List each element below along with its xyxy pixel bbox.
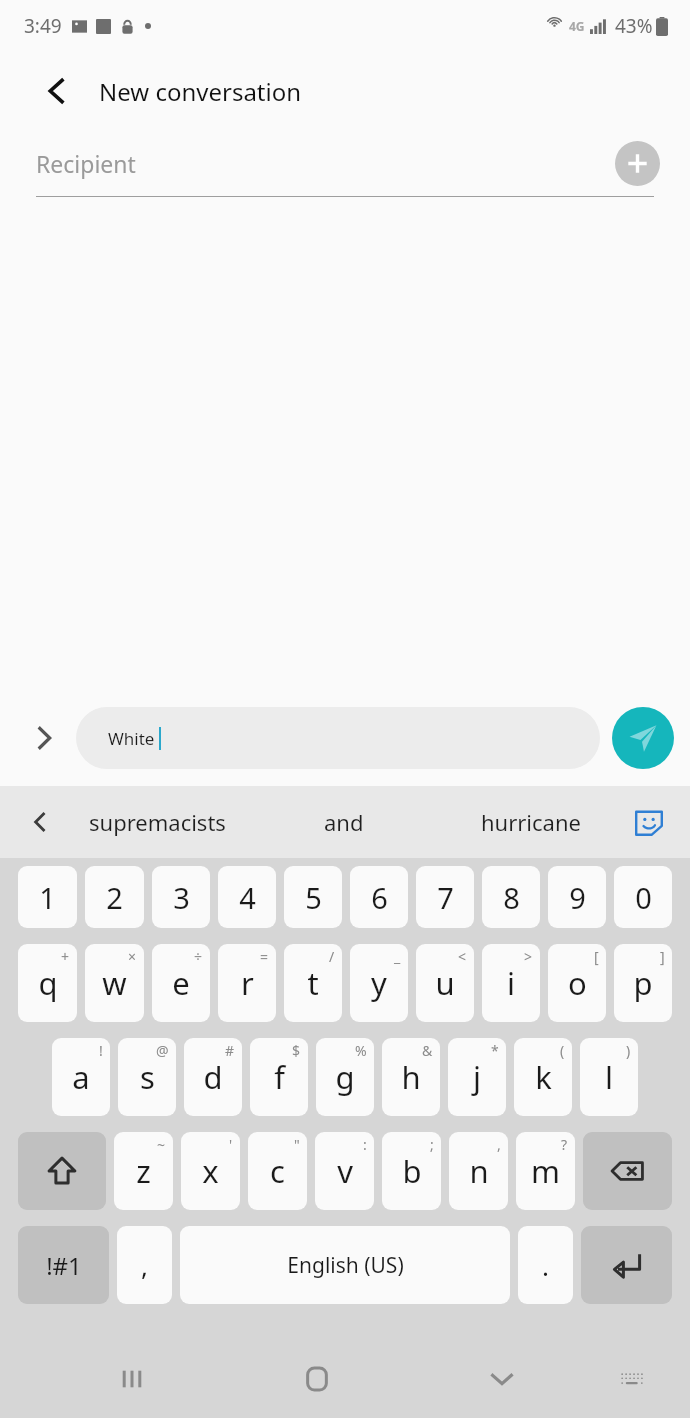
staticText: 5	[305, 878, 322, 917]
button[interactable]: Stickers	[624, 797, 674, 847]
staticText: m	[531, 1150, 560, 1192]
button[interactable]: !#1	[18, 1226, 109, 1304]
button[interactable]: 7	[416, 866, 474, 928]
staticText: ]	[660, 947, 665, 966]
button[interactable]: #	[184, 1038, 242, 1116]
staticText: :	[363, 1135, 367, 1154]
button[interactable]: 9	[548, 866, 606, 928]
button[interactable]: &	[382, 1038, 440, 1116]
staticText: ,	[497, 1135, 501, 1154]
button[interactable]: 8	[482, 866, 540, 928]
button[interactable]: Recents	[102, 1349, 162, 1409]
staticText: and	[324, 807, 364, 837]
staticText: h	[401, 1056, 421, 1098]
button[interactable]: /	[284, 944, 342, 1022]
staticText: +	[61, 947, 70, 966]
staticText: q	[38, 962, 58, 1004]
button[interactable]: hurricane	[437, 786, 624, 858]
button[interactable]: =	[218, 944, 276, 1022]
button[interactable]: :	[315, 1132, 374, 1210]
staticText: 3:49	[24, 13, 62, 39]
staticText: z	[136, 1150, 151, 1192]
staticText: English (US)	[287, 1251, 404, 1280]
staticText: t	[307, 962, 319, 1004]
staticText: !	[99, 1041, 103, 1060]
staticText: !#1	[46, 1249, 82, 1282]
button[interactable]: Hide keyboard	[472, 1349, 532, 1409]
button[interactable]: $	[250, 1038, 308, 1116]
button[interactable]: ÷	[152, 944, 210, 1022]
staticText: '	[229, 1135, 233, 1154]
staticText: 3	[173, 878, 190, 917]
staticText: &	[422, 1041, 433, 1060]
staticText: c	[270, 1150, 285, 1192]
button[interactable]: [	[548, 944, 606, 1022]
staticText: r	[241, 962, 254, 1004]
button[interactable]: .	[518, 1226, 573, 1304]
button[interactable]: >	[482, 944, 540, 1022]
button[interactable]: 6	[350, 866, 408, 928]
button[interactable]: Send	[612, 707, 674, 769]
staticText: >	[524, 947, 533, 966]
button[interactable]: (	[514, 1038, 572, 1116]
button[interactable]: )	[580, 1038, 638, 1116]
staticText: New conversation	[99, 75, 302, 108]
staticText: g	[335, 1056, 355, 1098]
button[interactable]: 2	[85, 866, 144, 928]
button[interactable]: and	[250, 786, 437, 858]
staticText: 0	[635, 878, 652, 917]
staticText: 4G	[569, 18, 585, 34]
button[interactable]: ~	[114, 1132, 173, 1210]
button[interactable]: @	[118, 1038, 176, 1116]
staticText: ,	[141, 1248, 148, 1283]
button[interactable]: ?	[516, 1132, 575, 1210]
button[interactable]: 4	[218, 866, 276, 928]
button[interactable]: Keyboard layout	[606, 1353, 658, 1405]
staticText: v	[337, 1150, 353, 1192]
staticText: ;	[430, 1135, 434, 1154]
button[interactable]: ]	[614, 944, 672, 1022]
button[interactable]: _	[350, 944, 408, 1022]
staticText: 9	[569, 878, 586, 917]
button[interactable]: Expand	[18, 712, 70, 764]
button[interactable]: 1	[18, 866, 77, 928]
button[interactable]: 5	[284, 866, 342, 928]
button[interactable]: !	[52, 1038, 110, 1116]
staticText: y	[371, 962, 387, 1004]
button[interactable]: enter	[581, 1226, 672, 1304]
button[interactable]: 0	[614, 866, 672, 928]
button[interactable]: +	[18, 944, 77, 1022]
button[interactable]: 3	[152, 866, 210, 928]
staticText: (	[560, 1041, 565, 1060]
staticText: $	[292, 1041, 301, 1060]
button[interactable]: <	[416, 944, 474, 1022]
staticText: ?	[561, 1135, 568, 1154]
staticText: k	[535, 1056, 552, 1098]
staticText: Recipient	[36, 148, 615, 179]
button[interactable]: English (US)	[180, 1226, 510, 1304]
button[interactable]: ;	[382, 1132, 441, 1210]
staticText: 2	[106, 878, 123, 917]
staticText: ~	[157, 1135, 166, 1154]
button[interactable]: Back	[30, 64, 84, 118]
button[interactable]: "	[248, 1132, 307, 1210]
button[interactable]: White	[76, 707, 600, 769]
button[interactable]: '	[181, 1132, 240, 1210]
staticText: n	[469, 1150, 489, 1192]
button[interactable]: Previous suggestions	[16, 798, 64, 846]
staticText: 1	[39, 878, 56, 917]
staticText: _	[394, 947, 401, 966]
staticText: hurricane	[481, 807, 581, 837]
button[interactable]: *	[448, 1038, 506, 1116]
button[interactable]: %	[316, 1038, 374, 1116]
button[interactable]: supremacists	[64, 786, 250, 858]
button[interactable]: Home	[287, 1349, 347, 1409]
button[interactable]: shift	[18, 1132, 106, 1210]
button[interactable]: Add recipient	[615, 141, 660, 186]
button[interactable]: ,	[117, 1226, 172, 1304]
button[interactable]: ×	[85, 944, 144, 1022]
button[interactable]: ,	[449, 1132, 508, 1210]
staticText: x	[202, 1150, 219, 1192]
staticText: ×	[128, 947, 137, 966]
button[interactable]: del	[583, 1132, 672, 1210]
